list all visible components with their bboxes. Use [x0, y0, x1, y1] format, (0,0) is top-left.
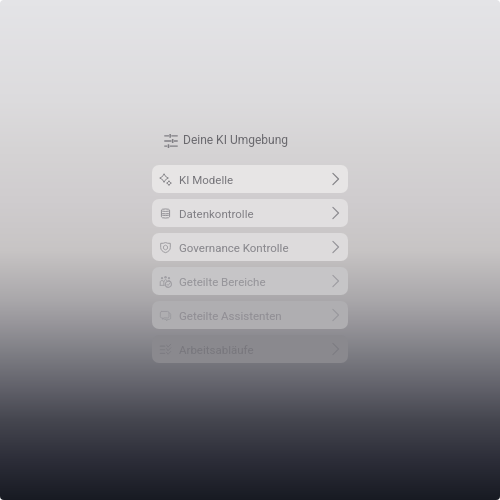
- staticText: Deine KI Umgebung: [183, 133, 289, 147]
- button[interactable]: Arbeitsabläufe: [152, 335, 348, 363]
- staticText: Datenkontrolle: [179, 207, 329, 220]
- staticText: Geteilte Assistenten: [179, 309, 329, 322]
- button[interactable]: Geteilte Assistenten: [152, 301, 348, 329]
- staticText: Geteilte Bereiche: [179, 275, 329, 288]
- button[interactable]: KI Modelle: [152, 165, 348, 193]
- button[interactable]: Governance Kontrolle: [152, 233, 348, 261]
- staticText: Arbeitsabläufe: [179, 343, 329, 356]
- button[interactable]: Geteilte Bereiche: [152, 267, 348, 295]
- button[interactable]: Datenkontrolle: [152, 199, 348, 227]
- staticText: Governance Kontrolle: [179, 241, 329, 254]
- staticText: KI Modelle: [179, 173, 329, 186]
